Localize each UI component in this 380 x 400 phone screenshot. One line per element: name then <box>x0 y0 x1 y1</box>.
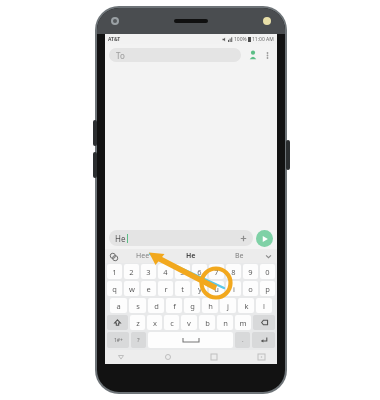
button[interactable]: q <box>107 281 122 296</box>
staticText: He <box>186 251 196 261</box>
button[interactable]: More options <box>261 49 273 61</box>
button[interactable]: d <box>148 298 164 313</box>
staticText: u <box>214 284 219 294</box>
button[interactable]: 5 <box>175 264 190 279</box>
staticText: f <box>173 301 176 311</box>
staticText: p <box>265 284 270 294</box>
staticText: 6 <box>197 267 202 277</box>
button[interactable]: 8 <box>226 264 241 279</box>
staticText: z <box>136 318 140 328</box>
staticText: 3 <box>146 267 151 277</box>
button[interactable]: e <box>141 281 156 296</box>
button[interactable]: t <box>175 281 190 296</box>
staticText: d <box>154 301 159 311</box>
button[interactable]: r <box>158 281 173 296</box>
button[interactable]: f <box>166 298 182 313</box>
button[interactable]: k <box>238 298 254 313</box>
button[interactable]: y <box>192 281 207 296</box>
staticText: e <box>146 284 151 294</box>
button[interactable]: 2 <box>124 264 139 279</box>
button[interactable]: Space <box>148 332 233 348</box>
staticText: b <box>205 318 210 328</box>
staticText: . <box>242 336 244 344</box>
button[interactable]: a <box>110 298 127 313</box>
staticText: i <box>233 284 235 294</box>
staticText: 1 <box>112 267 117 277</box>
staticText: x <box>153 318 157 328</box>
staticText: To <box>116 50 125 61</box>
staticText: l <box>263 301 265 311</box>
staticText: ? <box>137 336 140 344</box>
button[interactable]: n <box>217 315 233 330</box>
button[interactable]: Backspace <box>253 315 275 330</box>
button[interactable]: 9 <box>243 264 258 279</box>
staticText: 0 <box>265 267 270 277</box>
staticText: 8 <box>231 267 236 277</box>
button[interactable]: Keyboard settings <box>108 251 119 262</box>
staticText: j <box>227 301 229 311</box>
button[interactable]: 1#+ <box>107 332 129 348</box>
button[interactable]: m <box>235 315 251 330</box>
button[interactable]: x <box>147 315 162 330</box>
staticText: s <box>136 301 140 311</box>
staticText: y <box>198 284 202 294</box>
staticText: c <box>170 318 174 328</box>
button[interactable]: 6 <box>192 264 207 279</box>
staticText: 11:00 AM <box>252 36 274 43</box>
button[interactable]: He <box>167 249 215 263</box>
button[interactable]: 0 <box>260 264 275 279</box>
button[interactable]: Recent apps <box>208 351 220 363</box>
button[interactable]: l <box>256 298 272 313</box>
staticText: 2 <box>129 267 134 277</box>
staticText: v <box>187 318 191 328</box>
button[interactable]: Expand suggestions <box>263 251 274 262</box>
button[interactable]: b <box>199 315 215 330</box>
button[interactable]: u <box>209 281 224 296</box>
button[interactable]: Add recipient <box>245 47 261 63</box>
staticText: He <box>115 233 126 244</box>
button[interactable]: 7 <box>209 264 224 279</box>
button[interactable]: Home <box>162 351 174 363</box>
button[interactable]: Shift <box>107 315 128 330</box>
button[interactable]: Enter <box>252 332 275 348</box>
staticText: m <box>239 318 247 328</box>
button[interactable]: h <box>202 298 218 313</box>
staticText: q <box>112 284 117 294</box>
staticText: n <box>223 318 228 328</box>
button[interactable]: He <box>109 230 253 246</box>
staticText: h <box>208 301 213 311</box>
button[interactable]: z <box>130 315 145 330</box>
staticText: 100% <box>234 36 247 43</box>
staticText: w <box>129 284 135 294</box>
button[interactable]: To <box>109 48 241 62</box>
staticText: 9 <box>248 267 253 277</box>
staticText: g <box>190 301 195 311</box>
staticText: Be <box>235 251 244 261</box>
staticText: 7 <box>214 267 219 277</box>
button[interactable]: p <box>260 281 275 296</box>
staticText: 4 <box>163 267 168 277</box>
staticText: Hee <box>136 251 150 261</box>
button[interactable]: 1 <box>107 264 122 279</box>
button[interactable]: g <box>184 298 200 313</box>
button[interactable]: 4 <box>158 264 173 279</box>
button[interactable]: w <box>124 281 139 296</box>
button[interactable]: s <box>129 298 146 313</box>
button[interactable]: j <box>220 298 236 313</box>
staticText: r <box>164 284 168 294</box>
button[interactable]: v <box>181 315 197 330</box>
button[interactable]: Be <box>215 249 263 263</box>
staticText: o <box>248 284 253 294</box>
button[interactable]: ? <box>131 332 146 348</box>
button[interactable]: Send <box>256 230 273 247</box>
button[interactable]: Hide keyboard <box>255 351 267 363</box>
button[interactable]: c <box>164 315 179 330</box>
button[interactable]: i <box>226 281 241 296</box>
button[interactable]: Hee <box>119 249 167 263</box>
button[interactable]: 3 <box>141 264 156 279</box>
staticText: 1#+ <box>114 337 123 344</box>
button[interactable]: Back <box>115 351 127 363</box>
staticText: AT&T <box>108 36 121 43</box>
button[interactable]: o <box>243 281 258 296</box>
